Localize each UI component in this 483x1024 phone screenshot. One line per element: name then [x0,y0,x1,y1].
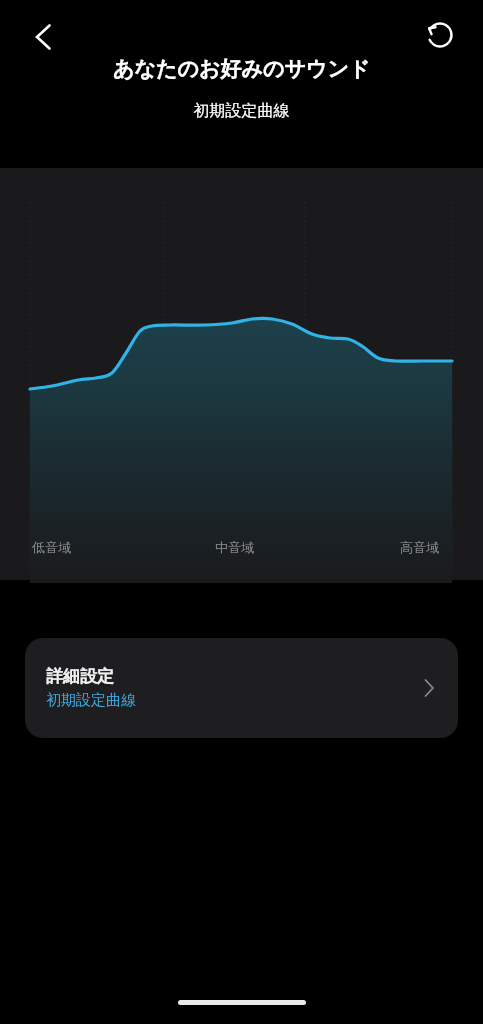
button[interactable]: Reset [411,6,469,64]
staticText: 中音域 [215,539,254,555]
staticText: あなたのお好みのサウンド [0,56,483,82]
button[interactable]: Back [14,8,72,66]
staticText: 高音域 [400,539,439,555]
staticText: 低音域 [32,539,71,555]
button[interactable]: 詳細設定 [25,638,458,738]
staticText: 詳細設定 [46,666,114,687]
staticText: 初期設定曲線 [46,691,136,710]
staticText: 初期設定曲線 [0,101,483,121]
